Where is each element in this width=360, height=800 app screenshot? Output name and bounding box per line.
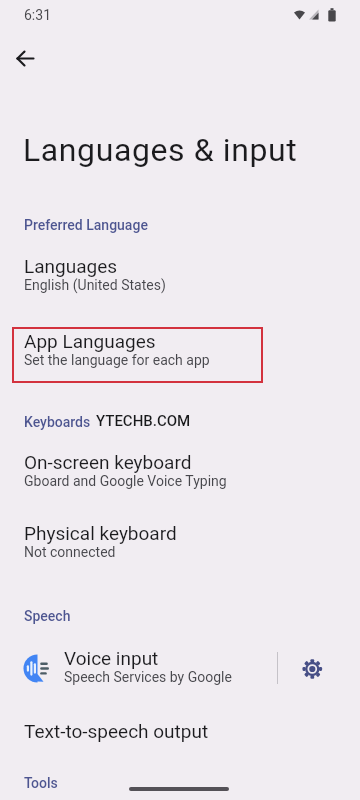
button[interactable] xyxy=(296,653,330,687)
button[interactable]: Voice input xyxy=(0,640,360,696)
staticText: On-screen keyboard xyxy=(24,451,192,473)
staticText: Physical keyboard xyxy=(24,522,177,544)
staticText: Tools xyxy=(24,775,58,791)
staticText: Languages & input xyxy=(23,131,298,169)
staticText: Voice input xyxy=(64,647,159,669)
button[interactable]: On-screen keyboard xyxy=(0,435,360,499)
button[interactable]: Languages xyxy=(0,239,360,303)
staticText: YTECHB.COM xyxy=(96,412,191,430)
staticText: English (United States) xyxy=(24,277,166,293)
staticText: Keyboards xyxy=(24,414,91,430)
staticText: Speech xyxy=(24,608,71,624)
staticText: Preferred Language xyxy=(24,217,148,233)
staticText: Set the language for each app xyxy=(24,352,210,368)
staticText: Not connected xyxy=(24,544,116,560)
button[interactable] xyxy=(6,39,44,77)
staticText: App Languages xyxy=(24,330,156,352)
button[interactable]: Physical keyboard xyxy=(0,506,360,570)
button[interactable]: App Languages xyxy=(0,314,360,378)
staticText: 6:31 xyxy=(24,7,51,23)
staticText: Text-to-speech output xyxy=(24,720,209,742)
button[interactable]: Text-to-speech output xyxy=(0,704,360,756)
staticText: Gboard and Google Voice Typing xyxy=(24,473,227,489)
staticText: Speech Services by Google xyxy=(64,669,232,685)
staticText: Languages xyxy=(24,255,118,277)
